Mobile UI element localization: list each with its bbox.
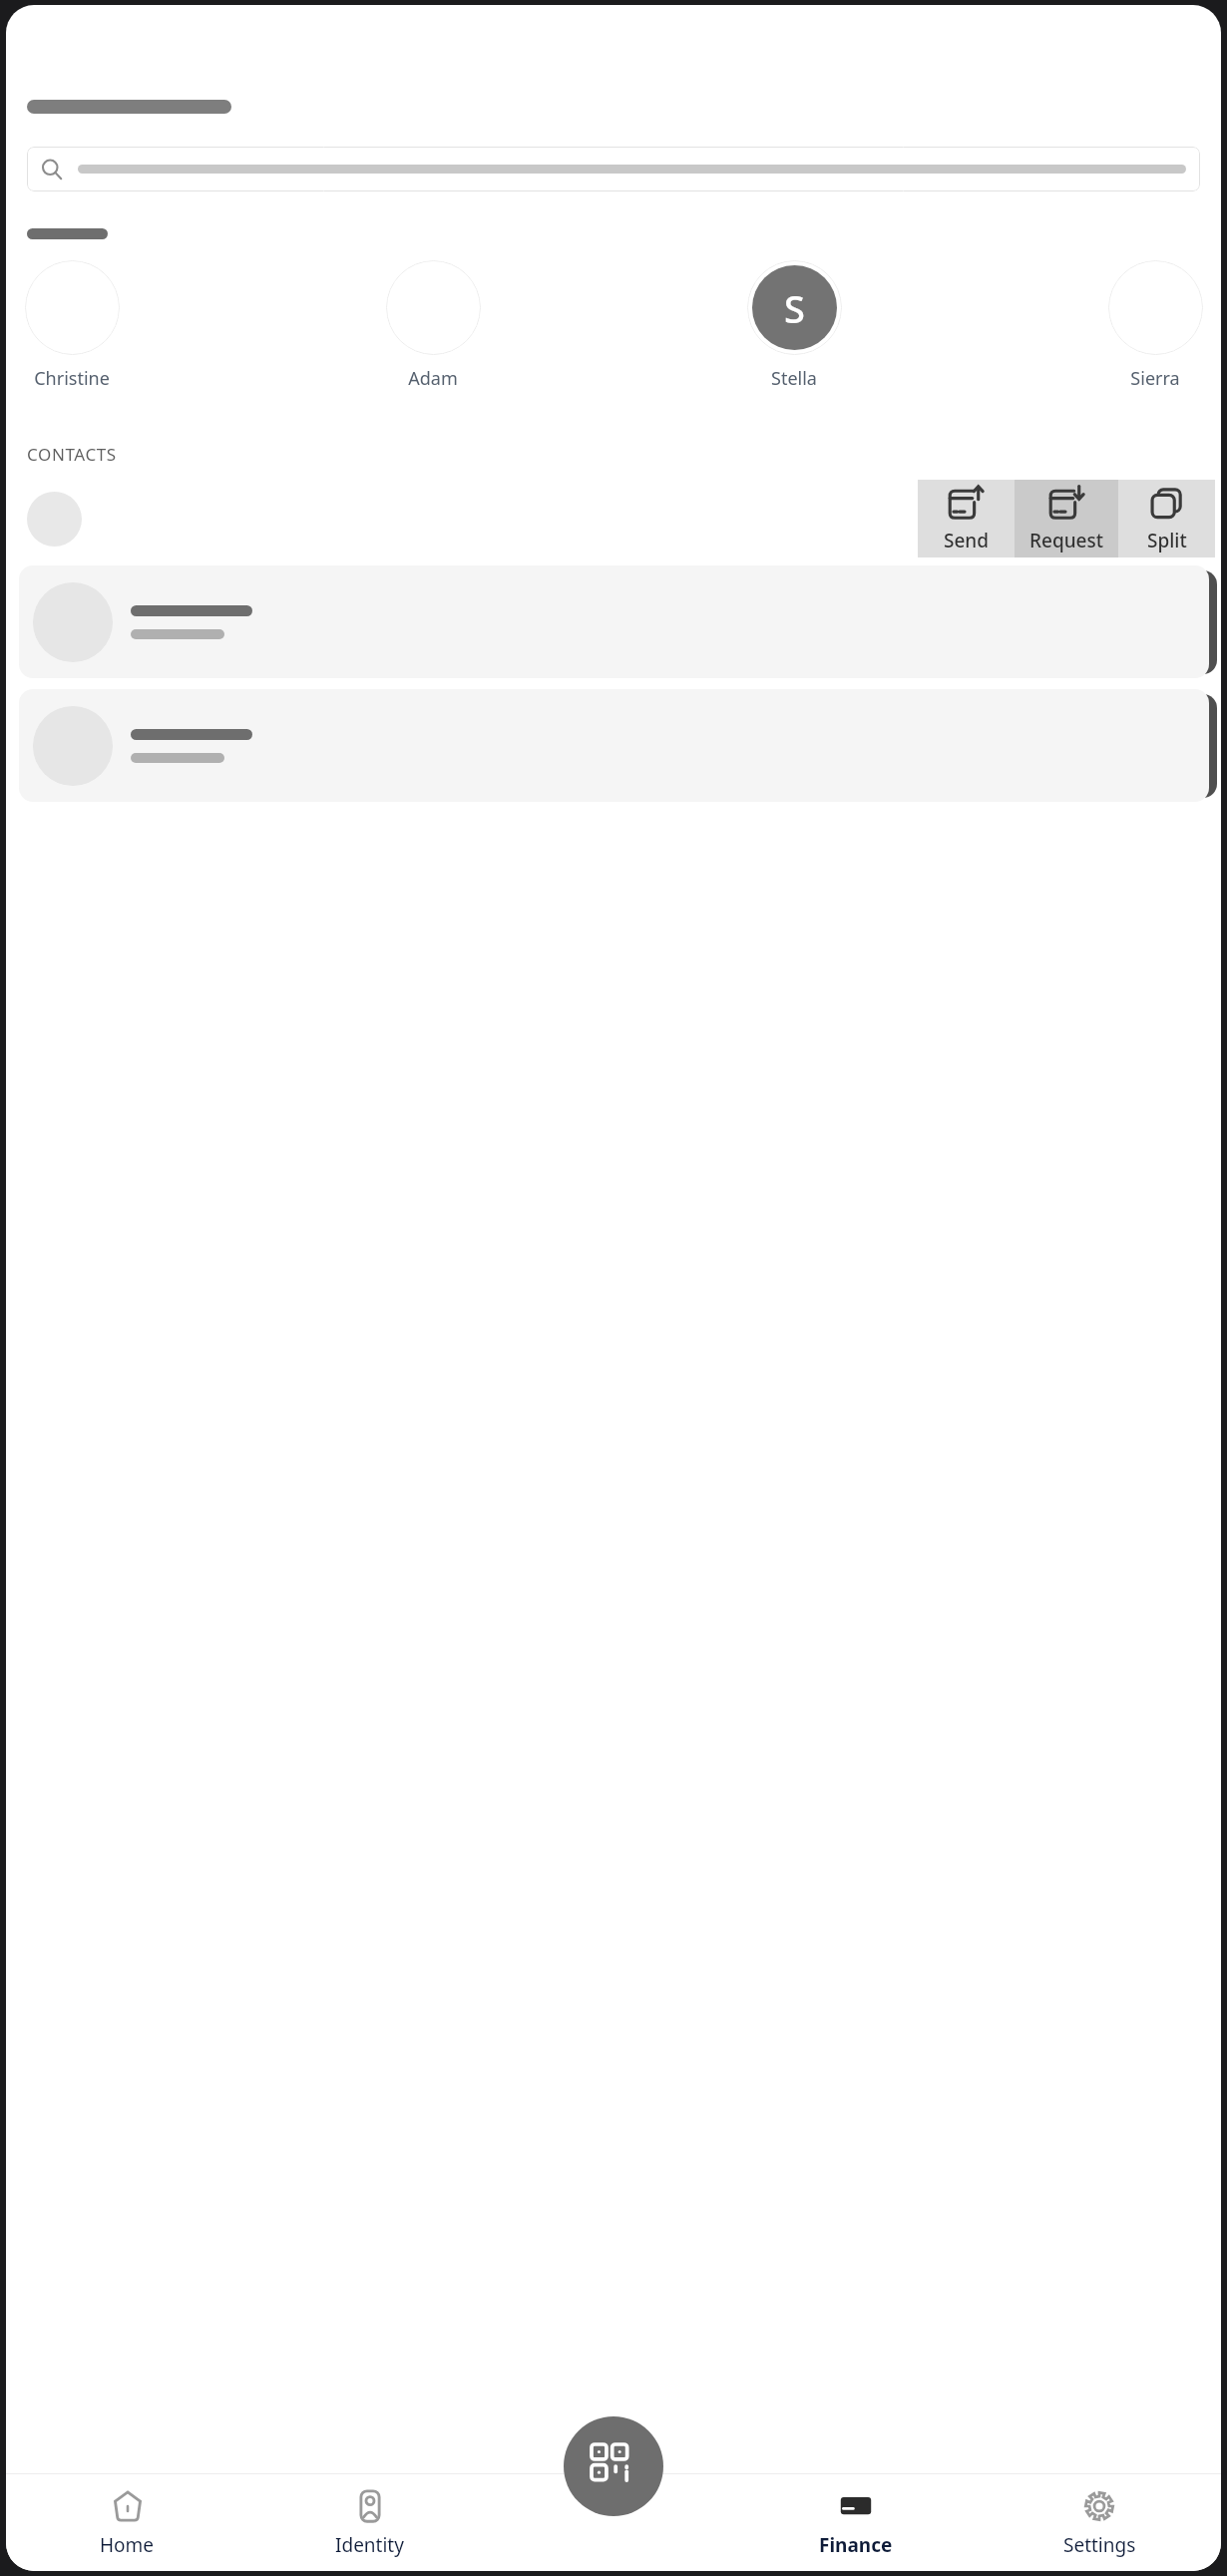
button[interactable]: Sierra <box>1107 258 1203 393</box>
other: Finance <box>837 2487 875 2525</box>
button[interactable]: Send <box>918 480 1015 557</box>
staticText: Split <box>1147 528 1187 553</box>
staticText: Christine <box>34 366 110 391</box>
staticText: Finance <box>819 2532 893 2558</box>
button[interactable]: Scan QR code <box>564 2416 663 2516</box>
button[interactable]: Finance <box>734 2473 978 2571</box>
button[interactable]: Home <box>6 2473 248 2571</box>
other: Home <box>109 2487 147 2525</box>
button[interactable]: Request <box>1015 480 1118 557</box>
button[interactable]: Adam <box>385 258 481 393</box>
button[interactable] <box>19 565 1209 678</box>
staticText: Adam <box>408 366 458 391</box>
staticText: Settings <box>1063 2532 1136 2558</box>
staticText: Identity <box>335 2532 404 2558</box>
staticText: Send <box>944 528 990 553</box>
button[interactable]: Split <box>1118 480 1215 557</box>
button[interactable]: Identity <box>248 2473 491 2571</box>
staticText: Request <box>1029 528 1104 553</box>
button[interactable] <box>19 689 1209 802</box>
button[interactable]: S <box>746 258 842 393</box>
button[interactable] <box>27 147 1200 191</box>
staticText: Sierra <box>1130 366 1180 391</box>
staticText: S <box>784 282 805 334</box>
button[interactable]: Settings <box>978 2473 1221 2571</box>
staticText: CONTACTS <box>27 443 117 466</box>
other: Settings <box>1080 2487 1118 2525</box>
staticText: Stella <box>771 366 817 391</box>
button[interactable]: Christine <box>24 258 120 393</box>
other: Identity <box>351 2487 389 2525</box>
staticText: Home <box>100 2532 155 2558</box>
